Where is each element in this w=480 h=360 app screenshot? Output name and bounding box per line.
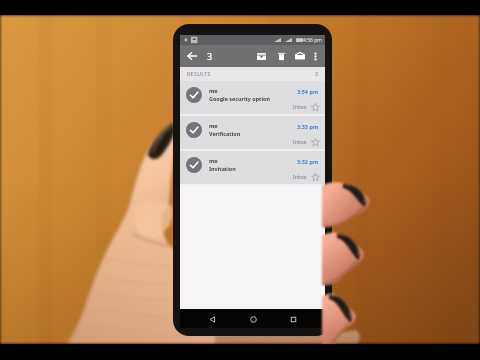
- staticText: me: [209, 157, 218, 164]
- button[interactable]: More options: [309, 50, 322, 63]
- staticText: RESULTS: [187, 71, 211, 78]
- staticText: 3:54 pm: [297, 88, 319, 95]
- staticText: 4:56 pm: [303, 37, 322, 44]
- button[interactable]: me: [180, 151, 325, 186]
- staticText: me: [209, 122, 218, 129]
- staticText: me: [209, 87, 218, 94]
- staticText: 3: [315, 71, 318, 78]
- staticText: Inbox: [293, 139, 307, 146]
- button[interactable]: Delete: [273, 48, 289, 64]
- staticText: Inbox: [293, 104, 307, 111]
- staticText: 3: [207, 50, 213, 62]
- button[interactable]: Back: [203, 310, 221, 328]
- staticText: 3:33 pm: [297, 123, 319, 130]
- button[interactable]: me: [180, 81, 325, 116]
- button[interactable]: Home: [244, 310, 262, 328]
- button[interactable]: me: [180, 116, 325, 151]
- staticText: Invitation: [209, 165, 236, 172]
- button[interactable]: Back: [184, 48, 200, 64]
- button[interactable]: Recent apps: [284, 310, 302, 328]
- button[interactable]: Mark unread: [292, 48, 308, 64]
- staticText: Verification: [209, 130, 241, 137]
- staticText: 3:32 pm: [297, 158, 319, 165]
- staticText: Inbox: [293, 174, 307, 181]
- button[interactable]: Archive: [253, 48, 269, 64]
- staticText: Google security option: [209, 95, 270, 102]
